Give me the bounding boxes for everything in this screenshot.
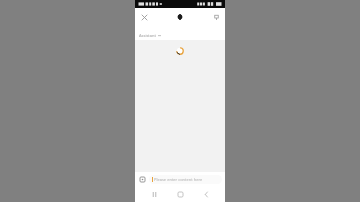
button[interactable]: Back: [199, 187, 213, 201]
staticText: Assistant: [139, 33, 156, 38]
button[interactable]: Recent apps: [147, 187, 161, 201]
button[interactable]: Close: [138, 11, 150, 23]
button[interactable]: Profile: [174, 11, 186, 23]
button[interactable]: Please enter content here: [149, 175, 222, 184]
button[interactable]: More options: [210, 11, 222, 23]
button[interactable]: Home: [173, 187, 187, 201]
staticText: Please enter content here: [154, 177, 203, 182]
button[interactable]: Assistant: [139, 33, 161, 38]
button[interactable]: Voice input: [138, 175, 147, 184]
